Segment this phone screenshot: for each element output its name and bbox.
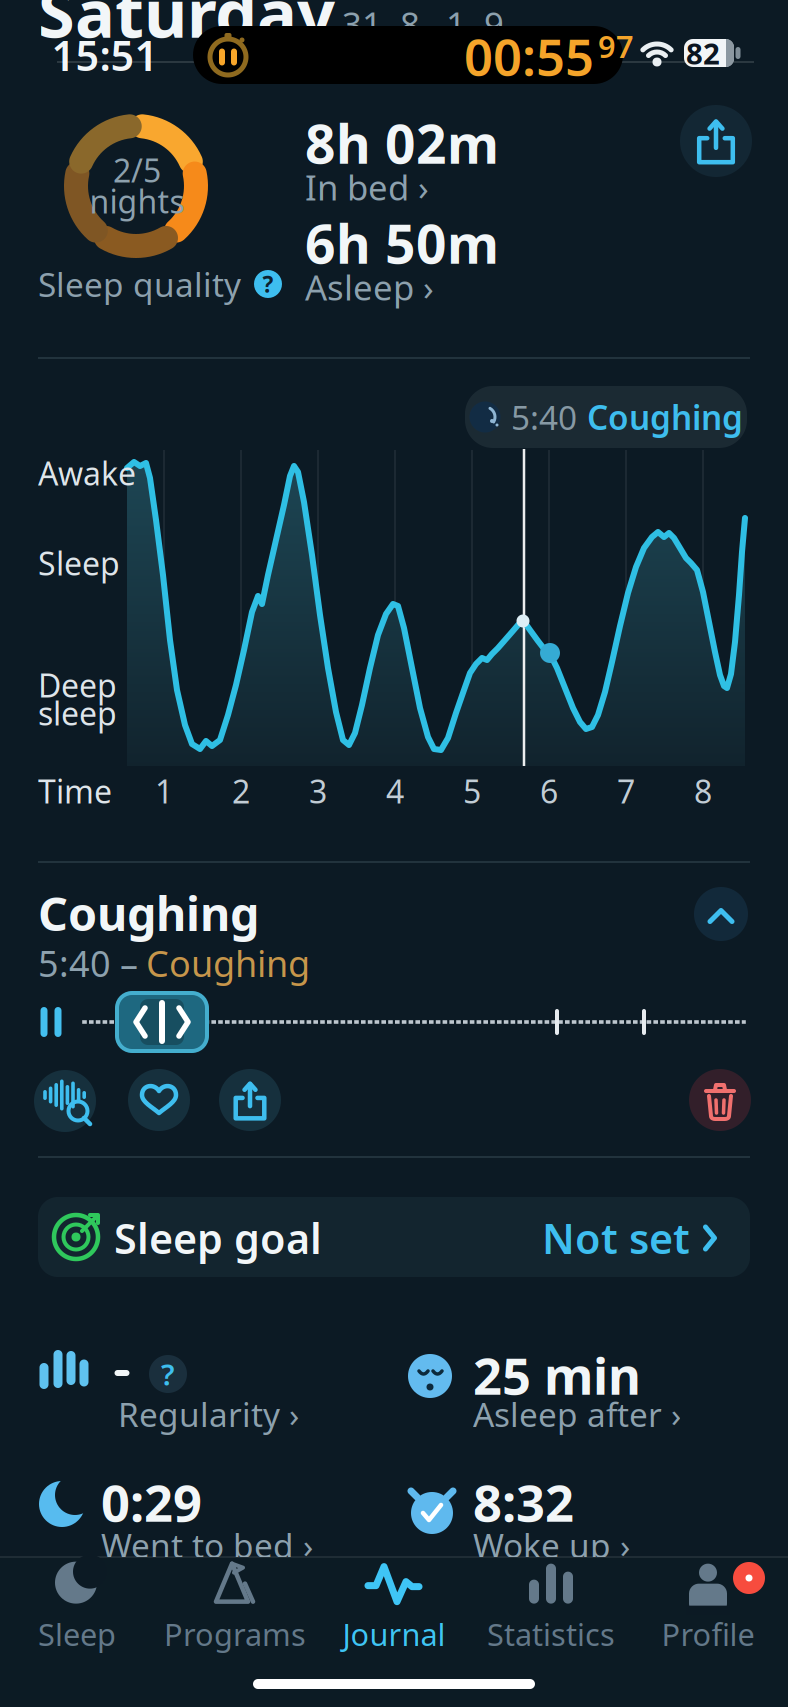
staticText: Sleep — [38, 1614, 116, 1654]
staticText: Not set — [542, 1211, 690, 1265]
button[interactable]: Programs — [160, 1560, 310, 1652]
staticText: Sleep quality — [38, 262, 241, 306]
button[interactable]: ? — [34, 1340, 394, 1440]
button[interactable]: 0:29 — [34, 1467, 394, 1567]
staticText: 5:40 – — [38, 939, 138, 987]
staticText: Sleep — [38, 542, 120, 584]
staticText: 97 — [598, 26, 634, 66]
button[interactable]: Share recording — [219, 1069, 281, 1131]
staticText: Programs — [164, 1614, 306, 1654]
button[interactable]: Asleep › — [0, 0, 788, 1707]
button[interactable]: Share — [680, 105, 752, 177]
staticText: 7 — [617, 770, 635, 812]
staticText: ? — [161, 1354, 175, 1393]
staticText: Woke up › — [473, 1523, 630, 1567]
staticText: 5 — [463, 770, 481, 812]
staticText: 4 — [386, 770, 404, 812]
staticText: 15:51 — [51, 28, 158, 82]
button[interactable]: What is sleep quality — [254, 270, 282, 298]
button[interactable]: Statistics — [476, 1562, 626, 1654]
staticText: Deep — [38, 664, 117, 706]
staticText: ? — [262, 269, 273, 299]
button[interactable]: Journal — [324, 1562, 464, 1654]
button[interactable]: Audio selection — [117, 993, 207, 1051]
staticText: Coughing — [587, 395, 743, 439]
button[interactable]: 8h 02m — [0, 0, 788, 1707]
staticText: Coughing — [146, 939, 310, 987]
staticText: Asleep › — [305, 264, 434, 310]
staticText: 3 — [309, 770, 327, 812]
button[interactable]: Sleep goal — [38, 1197, 750, 1277]
button[interactable]: In bed › — [0, 0, 788, 1707]
staticText: nights — [89, 180, 184, 222]
staticText: 1 — [155, 770, 173, 812]
button[interactable]: Sleep — [7, 1563, 147, 1653]
button[interactable]: 6h 50m — [0, 0, 788, 1707]
staticText: Statistics — [487, 1614, 615, 1654]
staticText: Regularity › — [118, 1392, 299, 1436]
staticText: Journal — [342, 1614, 445, 1654]
staticText: Time — [38, 770, 112, 812]
staticText: Went to bed › — [101, 1523, 313, 1567]
staticText: Awake — [38, 452, 136, 494]
button[interactable]: Pause — [20, 997, 82, 1047]
staticText: 0:29 — [101, 1468, 202, 1536]
staticText: 8 — [694, 770, 712, 812]
button[interactable]: Profile — [638, 1562, 778, 1654]
staticText: 31. 8.–1. 9. — [342, 1, 513, 47]
staticText: 25 min — [473, 1341, 641, 1409]
staticText: 2/5 — [113, 149, 161, 191]
staticText: In bed › — [305, 164, 429, 210]
staticText: Saturday — [38, 0, 335, 56]
staticText: sleep — [38, 692, 117, 734]
staticText: 6 — [540, 770, 558, 812]
staticText: 8:32 — [473, 1468, 574, 1536]
staticText: Sleep goal — [114, 1211, 322, 1265]
staticText: 6h 50m — [305, 208, 499, 278]
staticText: 2 — [232, 770, 250, 812]
button[interactable]: 8:32 — [406, 1467, 766, 1567]
staticText: 00:55 — [464, 22, 594, 90]
staticText: 82 — [686, 33, 720, 72]
staticText: 5:40 — [511, 395, 577, 439]
staticText: Asleep after › — [473, 1392, 681, 1436]
button[interactable]: Collapse — [694, 887, 748, 941]
button[interactable]: 25 min — [406, 1340, 766, 1440]
button[interactable]: Favorite — [128, 1069, 190, 1131]
staticText: Profile — [661, 1614, 754, 1654]
button[interactable]: Delete recording — [689, 1069, 751, 1131]
staticText: Coughing — [38, 882, 259, 944]
staticText: 8h 02m — [305, 108, 499, 178]
button[interactable]: Zoom waveform — [34, 1070, 96, 1132]
